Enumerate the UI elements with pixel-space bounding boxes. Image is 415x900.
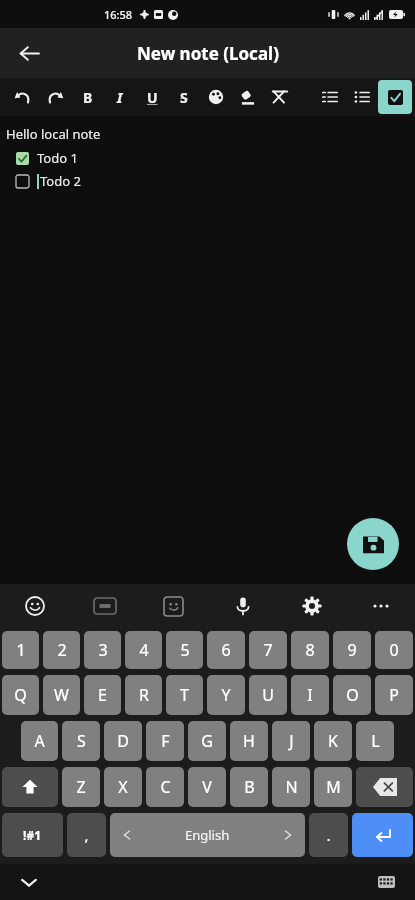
staticText: Q <box>14 684 27 706</box>
button[interactable]: 9 <box>333 631 371 669</box>
button[interactable]: mic <box>208 584 277 628</box>
button[interactable]: J <box>272 721 310 761</box>
button[interactable]: B <box>230 767 268 807</box>
staticText: U <box>147 88 158 107</box>
staticText: P <box>389 684 399 706</box>
button[interactable]: U <box>136 80 168 114</box>
button[interactable]: W <box>43 675 80 715</box>
button[interactable]: clear <box>264 80 296 114</box>
staticText: K <box>328 730 338 752</box>
button[interactable]: . <box>309 813 348 857</box>
button[interactable]: sticker <box>139 584 208 628</box>
button[interactable]: H <box>230 721 268 761</box>
button[interactable]: 5 <box>166 631 203 669</box>
button[interactable]: F <box>146 721 184 761</box>
button[interactable]: K <box>314 721 352 761</box>
button[interactable]: N <box>272 767 310 807</box>
staticText: Todo 1 <box>37 149 78 167</box>
staticText: S <box>77 730 86 752</box>
button[interactable]: 4 <box>125 631 162 669</box>
button[interactable]: I <box>291 675 329 715</box>
button[interactable]: I <box>104 80 136 114</box>
staticText: I <box>307 684 313 706</box>
button[interactable]: sym <box>2 813 63 857</box>
staticText: Y <box>221 684 231 706</box>
button[interactable]: R <box>125 675 162 715</box>
staticText: C <box>160 776 171 798</box>
button[interactable]: more <box>346 584 415 628</box>
button[interactable]: ol <box>314 80 346 114</box>
button[interactable]: S <box>168 80 200 114</box>
button[interactable]: backspace <box>356 767 413 807</box>
button[interactable]: V <box>188 767 226 807</box>
button[interactable]: O <box>333 675 371 715</box>
button[interactable]: gif <box>70 584 139 628</box>
button[interactable]: S <box>62 721 100 761</box>
button[interactable]: D <box>104 721 142 761</box>
button[interactable]: A <box>21 721 58 761</box>
button[interactable]: B <box>72 80 104 114</box>
staticText: O <box>346 684 359 706</box>
button[interactable]: G <box>188 721 226 761</box>
button[interactable]: U <box>249 675 287 715</box>
staticText: 2 <box>57 639 67 661</box>
staticText: !#1 <box>23 827 42 843</box>
button[interactable]: 7 <box>249 631 287 669</box>
staticText: B <box>83 88 93 107</box>
button[interactable]: T <box>166 675 203 715</box>
button[interactable]: L <box>356 721 394 761</box>
staticText: J <box>289 730 294 752</box>
staticText: E <box>98 684 107 706</box>
staticText: D <box>117 730 129 752</box>
button[interactable]: 8 <box>291 631 329 669</box>
button[interactable]: 2 <box>43 631 80 669</box>
staticText: 8 <box>305 639 315 661</box>
staticText: R <box>139 684 149 706</box>
staticText: W <box>54 684 69 706</box>
staticText: Todo 2 <box>40 172 81 190</box>
button[interactable]: fill <box>232 80 264 114</box>
button[interactable]: , <box>67 813 106 857</box>
button[interactable]: X <box>104 767 142 807</box>
button[interactable]: Y <box>207 675 245 715</box>
button[interactable]: undo <box>6 80 39 114</box>
staticText: N <box>285 776 298 798</box>
button[interactable]: emoji <box>0 584 70 628</box>
button[interactable]: 6 <box>207 631 245 669</box>
button[interactable]: C <box>146 767 184 807</box>
button[interactable]: Back <box>8 32 50 74</box>
staticText: 7 <box>263 639 273 661</box>
staticText: 4 <box>139 639 149 661</box>
button[interactable]: ul <box>346 80 378 114</box>
button[interactable]: Save <box>347 518 399 570</box>
staticText: B <box>244 776 255 798</box>
staticText: F <box>161 730 170 752</box>
button[interactable]: P <box>375 675 413 715</box>
button[interactable]: Todo 1 <box>16 149 78 167</box>
staticText: G <box>201 730 213 752</box>
staticText: 6 <box>221 639 231 661</box>
button[interactable]: palette <box>200 80 232 114</box>
staticText: X <box>118 776 128 798</box>
button[interactable]: 3 <box>84 631 121 669</box>
button[interactable]: Checklist <box>378 80 412 114</box>
button[interactable]: Z <box>62 767 100 807</box>
button[interactable]: redo <box>39 80 72 114</box>
button[interactable]: Switch keyboard <box>371 867 401 897</box>
staticText: 0 <box>389 639 399 661</box>
staticText: 16:58 <box>104 7 133 22</box>
staticText: V <box>202 776 212 798</box>
button[interactable]: Hide keyboard <box>14 867 44 897</box>
button[interactable]: 0 <box>375 631 413 669</box>
button[interactable]: shift <box>2 767 58 807</box>
button[interactable]: E <box>84 675 121 715</box>
button[interactable]: English <box>110 813 305 857</box>
staticText: I <box>117 88 123 107</box>
button[interactable]: Todo 2 <box>16 172 81 190</box>
button[interactable]: Q <box>2 675 39 715</box>
button[interactable]: settings <box>277 584 346 628</box>
button[interactable]: 1 <box>2 631 39 669</box>
button[interactable]: M <box>314 767 352 807</box>
button[interactable]: enter <box>352 813 413 857</box>
staticText: New note (Local) <box>137 42 279 65</box>
